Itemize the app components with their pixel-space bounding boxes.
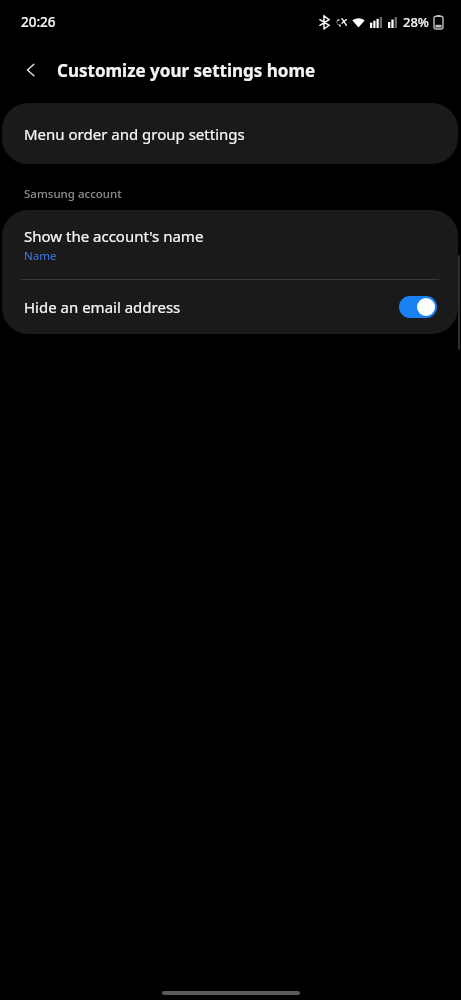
staticText: 20:26 <box>21 13 56 31</box>
button[interactable]: Show the account's name <box>2 210 458 279</box>
staticText: Menu order and group settings <box>24 124 245 144</box>
button[interactable]: Hide an email address toggle <box>399 296 437 318</box>
button[interactable]: Menu order and group settings <box>2 103 458 164</box>
staticText: Customize your settings home <box>57 59 316 82</box>
button[interactable]: Hide an email address <box>2 280 458 334</box>
staticText: 28% <box>403 13 429 31</box>
staticText: Show the account's name <box>24 226 204 246</box>
staticText: Samsung account <box>24 186 122 202</box>
button[interactable]: Back <box>10 49 52 91</box>
staticText: Hide an email address <box>24 297 399 317</box>
staticText: Name <box>24 248 57 264</box>
